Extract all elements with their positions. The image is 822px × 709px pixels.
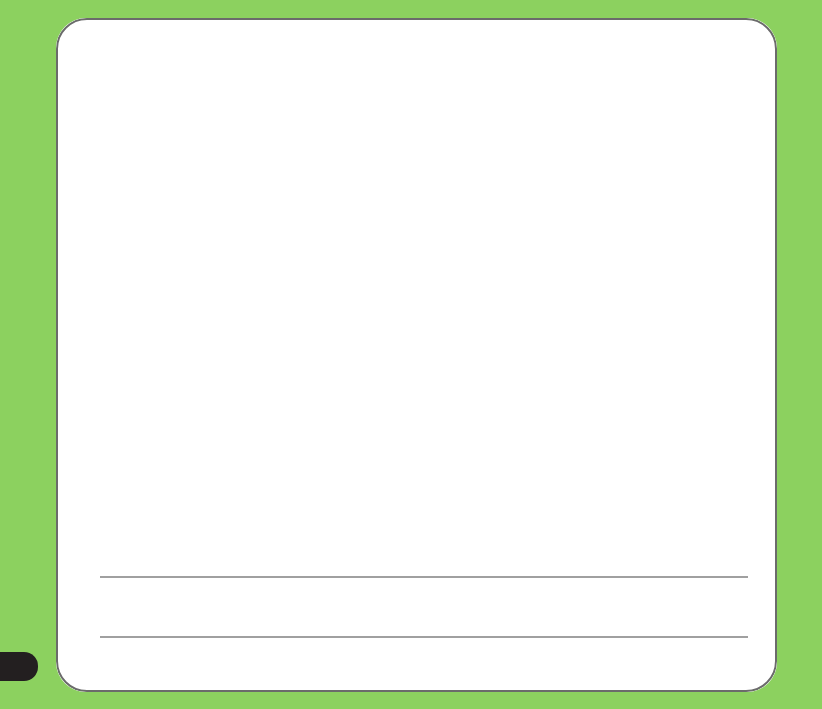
button[interactable]: Open side tab [0, 652, 38, 681]
button[interactable] [56, 18, 777, 692]
